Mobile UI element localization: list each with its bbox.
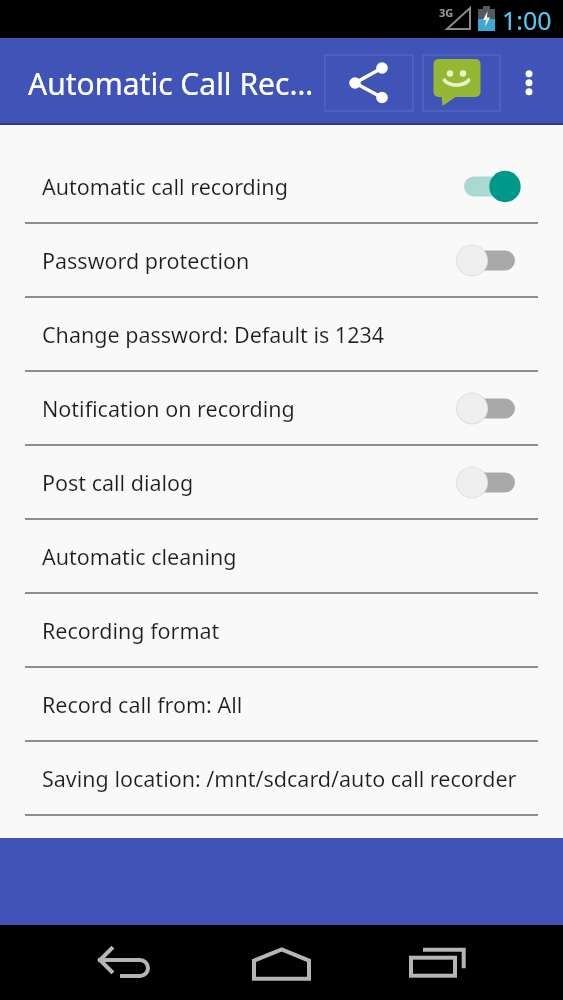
button[interactable]: Change password: Default is 1234 xyxy=(0,298,563,372)
button[interactable]: Record call from: All xyxy=(0,668,563,742)
staticText: 1:00 xyxy=(502,3,552,37)
staticText: Password protection xyxy=(42,246,458,275)
staticText: Saving location: /mnt/sdcard/auto call r… xyxy=(42,764,521,793)
button[interactable]: Automatic call recording xyxy=(0,150,563,224)
button[interactable] xyxy=(234,925,328,1000)
button[interactable] xyxy=(391,925,485,1000)
staticText: Automatic cleaning xyxy=(42,542,521,571)
button[interactable]: Recording format xyxy=(0,594,563,668)
staticText: Change password: Default is 1234 xyxy=(42,320,521,349)
button[interactable] xyxy=(423,55,500,111)
button[interactable]: Saving location: /mnt/sdcard/auto call r… xyxy=(0,742,563,816)
staticText: Record call from: All xyxy=(42,690,521,719)
button[interactable] xyxy=(509,55,549,111)
staticText: Automatic Call Rec… xyxy=(28,63,323,104)
button[interactable]: Notification on recording xyxy=(0,372,563,446)
button[interactable] xyxy=(78,925,172,1000)
button[interactable]: Password protection xyxy=(0,224,563,298)
staticText: Post call dialog xyxy=(42,468,458,497)
staticText: Recording format xyxy=(42,616,521,645)
staticText: Notification on recording xyxy=(42,394,458,423)
button[interactable]: Automatic cleaning xyxy=(0,520,563,594)
button[interactable] xyxy=(325,55,413,111)
button[interactable]: Post call dialog xyxy=(0,446,563,520)
staticText: Automatic call recording xyxy=(42,172,458,201)
staticText: 3G xyxy=(439,5,454,20)
